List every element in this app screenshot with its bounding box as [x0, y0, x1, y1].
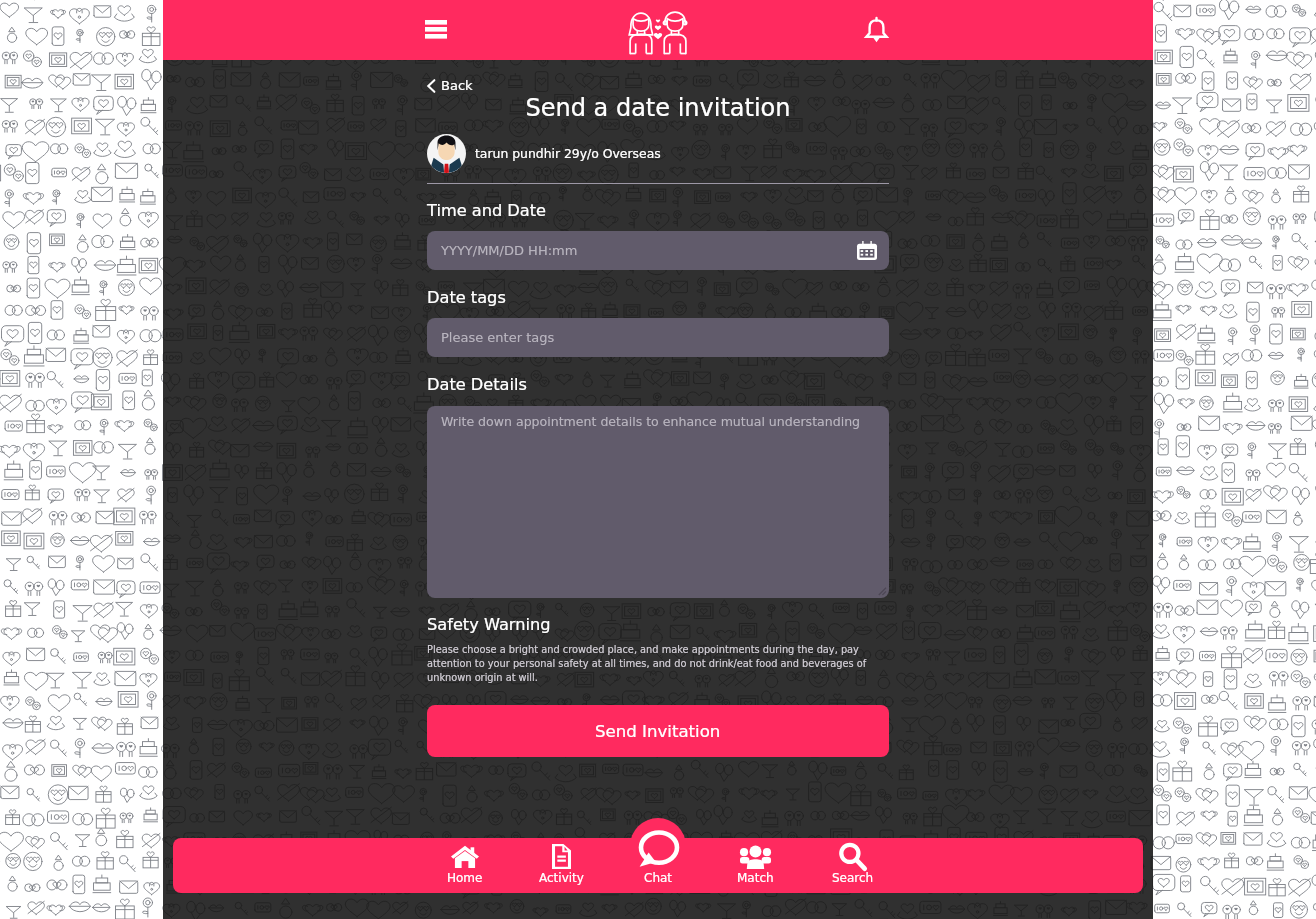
staticText: Match [737, 871, 774, 885]
staticText: Send a date invitation [163, 94, 1153, 122]
staticText: Chat [644, 871, 673, 885]
button[interactable]: Menu [416, 10, 456, 50]
button[interactable]: Back [427, 78, 473, 93]
staticText: Date tags [427, 288, 506, 307]
staticText: Search [832, 871, 874, 885]
button[interactable]: Search [804, 838, 901, 893]
staticText: tarun pundhir 29y/o Overseas [475, 146, 661, 160]
staticText: Date Details [427, 375, 527, 394]
button[interactable]: Home [416, 838, 513, 893]
button[interactable]: YYYY/MM/DD HH:mm [427, 231, 889, 270]
staticText: Back [441, 78, 473, 93]
button[interactable]: Send Invitation [427, 705, 889, 757]
button[interactable]: Chat [610, 838, 707, 893]
staticText: Time and Date [427, 201, 547, 220]
button[interactable]: Notifications [856, 10, 896, 50]
staticText: Please enter tags [441, 330, 555, 345]
staticText: Home [447, 871, 483, 885]
staticText: Send Invitation [595, 722, 721, 741]
staticText: Safety Warning [427, 615, 551, 634]
button[interactable]: Activity [513, 838, 610, 893]
button[interactable]: Please enter tags [427, 318, 889, 357]
staticText: Please choose a bright and crowded place… [427, 644, 889, 683]
staticText: Activity [539, 871, 584, 885]
staticText: YYYY/MM/DD HH:mm [441, 243, 578, 258]
button[interactable]: Match [707, 838, 804, 893]
staticText: Write down appointment details to enhanc… [441, 414, 861, 429]
button[interactable]: Write down appointment details to enhanc… [427, 406, 889, 598]
button[interactable]: Home logo [625, 5, 691, 55]
